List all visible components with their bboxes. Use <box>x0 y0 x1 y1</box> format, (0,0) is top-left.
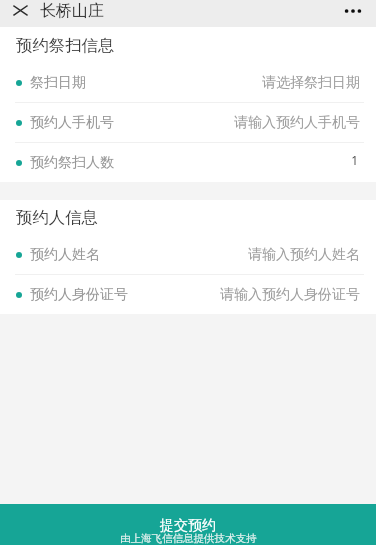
staticText: 提交预约 <box>160 517 216 535</box>
staticText: 祭扫日期 <box>30 74 86 92</box>
button[interactable]: More options <box>340 0 366 21</box>
button[interactable]: 预约人姓名 <box>0 235 376 274</box>
staticText: 预约祭扫信息 <box>16 35 115 56</box>
button[interactable]: Close <box>10 0 30 21</box>
staticText: 请输入预约人身份证号 <box>220 286 360 304</box>
staticText: 预约人手机号 <box>30 114 114 132</box>
button[interactable]: 提交预约 <box>0 504 376 545</box>
button[interactable]: 预约人身份证号 <box>0 275 376 314</box>
staticText: 长桥山庄 <box>40 1 104 21</box>
staticText: 预约祭扫人数 <box>30 154 114 172</box>
staticText: 1 <box>351 152 358 168</box>
button[interactable]: 预约祭扫人数 <box>0 143 376 182</box>
staticText: 请选择祭扫日期 <box>262 74 360 92</box>
staticText: 预约人信息 <box>16 207 98 228</box>
staticText: 预约人身份证号 <box>30 286 128 304</box>
staticText: 预约人姓名 <box>30 246 100 264</box>
button[interactable]: 预约人手机号 <box>0 103 376 142</box>
staticText: 由上海飞信信息提供技术支持 <box>120 532 257 545</box>
button[interactable]: 祭扫日期 <box>0 63 376 102</box>
staticText: 请输入预约人姓名 <box>248 246 360 264</box>
staticText: 请输入预约人手机号 <box>234 114 360 132</box>
